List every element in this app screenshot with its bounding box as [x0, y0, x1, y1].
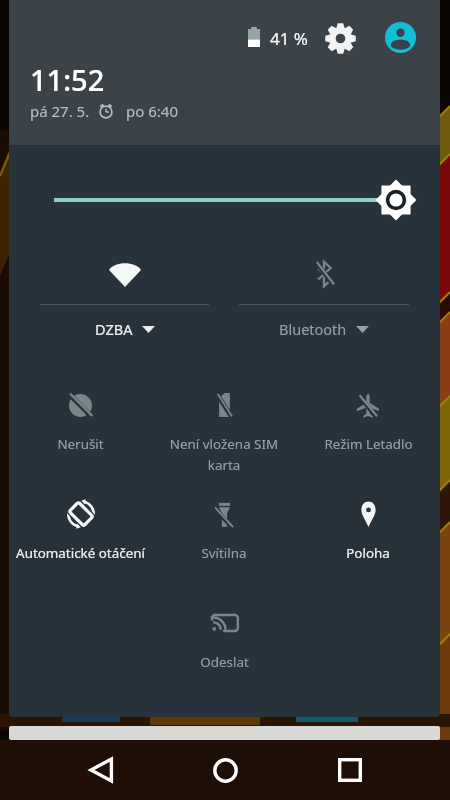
staticText: Poloha	[346, 544, 390, 562]
button[interactable]: Režim Letadlo	[296, 386, 440, 453]
button[interactable]: Odeslat	[152, 604, 296, 671]
staticText: Nerušit	[57, 435, 104, 453]
button[interactable]: Recent apps	[319, 740, 380, 800]
button[interactable]: Poloha	[296, 495, 440, 562]
button[interactable]: Home	[195, 740, 256, 800]
staticText: Bluetooth	[279, 319, 347, 339]
button[interactable]: User account	[385, 22, 416, 53]
button[interactable]: Settings	[320, 18, 360, 58]
staticText: Automatické otáčení	[16, 544, 145, 562]
button[interactable]: Brightness	[9, 145, 440, 201]
staticText: po 6:40	[126, 101, 178, 121]
staticText: Svítilna	[201, 544, 247, 562]
button[interactable]: Nerušit	[9, 386, 152, 453]
button[interactable]: Není vložena SIM karta	[152, 386, 296, 474]
staticText: 11:52	[30, 60, 105, 99]
staticText: 41 %	[270, 27, 308, 50]
staticText: Není vložena SIM karta	[164, 435, 284, 474]
button[interactable]: DZBA	[25, 244, 224, 339]
button[interactable]: Automatické otáčení	[9, 495, 152, 562]
button[interactable]: Bluetooth	[224, 244, 424, 339]
staticText: DZBA	[95, 319, 133, 339]
button[interactable]: Back	[70, 740, 131, 800]
staticText: pá 27. 5.	[30, 101, 90, 121]
button[interactable]: Svítilna	[152, 495, 296, 562]
staticText: Odeslat	[200, 653, 249, 671]
staticText: Režim Letadlo	[324, 435, 413, 453]
